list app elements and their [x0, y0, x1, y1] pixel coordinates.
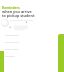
button[interactable]: Next	[58, 34, 64, 72]
staticText: when you arrive to pickup student	[2, 9, 35, 18]
staticText: Reminders	[2, 5, 20, 9]
button[interactable]: Notify staff	[5, 45, 37, 52]
button[interactable]: Arrival time	[5, 31, 37, 38]
button[interactable]: Pickup spot	[5, 38, 37, 45]
staticText: Confirm	[5, 54, 15, 57]
staticText: Pickup spot	[5, 40, 19, 43]
button[interactable]: Confirm	[5, 52, 37, 59]
staticText: Arrival time	[5, 33, 19, 36]
staticText: Notify staff	[5, 47, 18, 50]
